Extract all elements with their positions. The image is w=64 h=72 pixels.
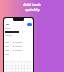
- staticText: quickly: [25, 7, 40, 12]
- button[interactable]: [5, 44, 32, 48]
- button[interactable]: [5, 40, 32, 44]
- staticText: Add task: [23, 2, 41, 7]
- button[interactable]: [27, 23, 32, 26]
- button[interactable]: [5, 52, 32, 56]
- button[interactable]: [5, 48, 32, 52]
- button[interactable]: Back: [5, 22, 9, 26]
